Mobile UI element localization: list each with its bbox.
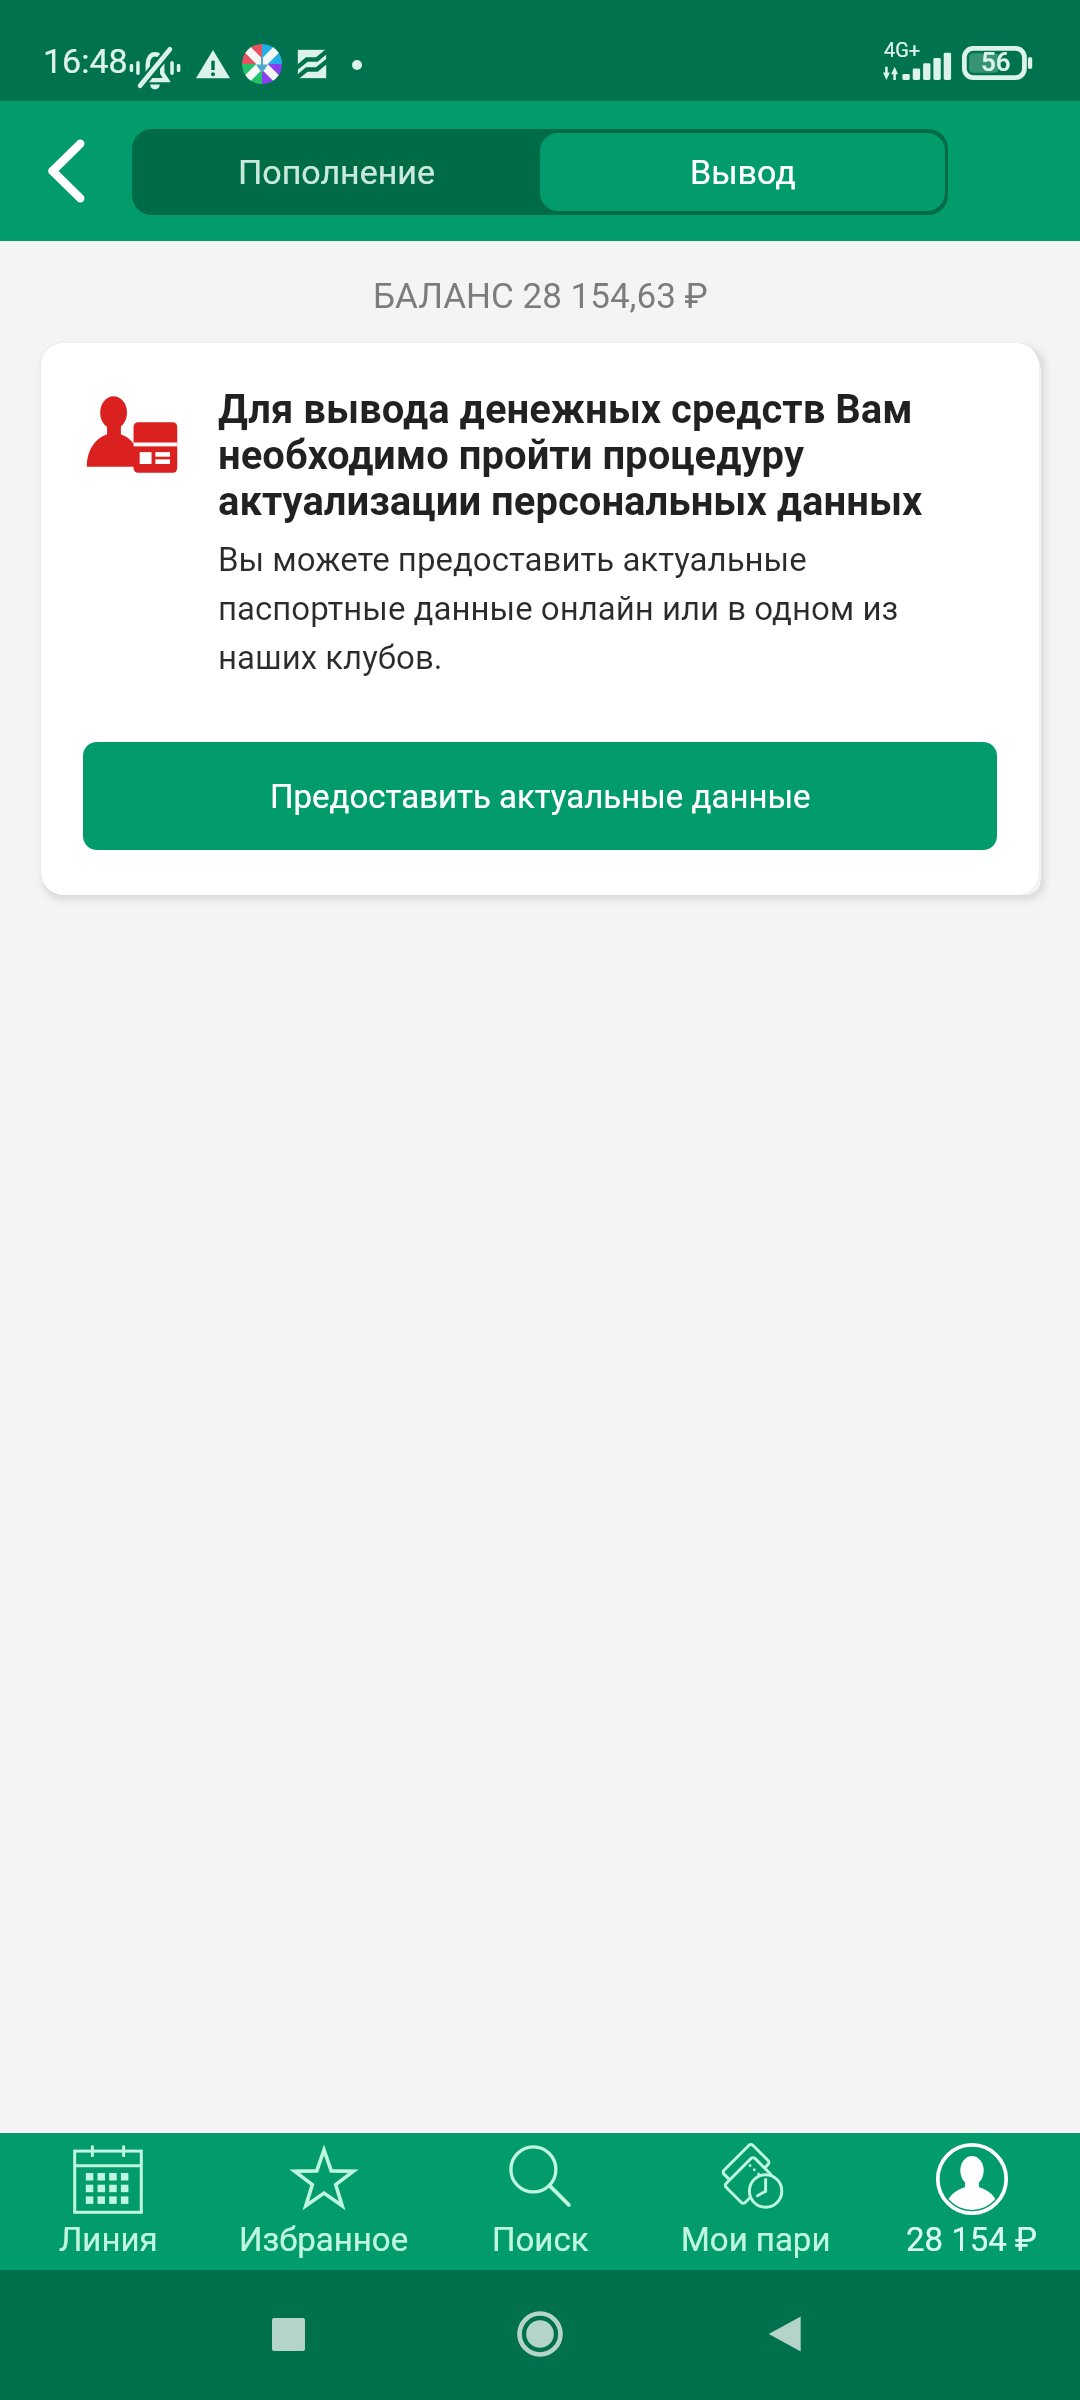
staticText: Поиск bbox=[492, 2220, 589, 2259]
staticText: Линия bbox=[59, 2220, 158, 2259]
staticText: Избранное bbox=[239, 2220, 409, 2259]
button[interactable]: Избранное bbox=[216, 2133, 432, 2270]
staticText: 4G+ bbox=[884, 38, 921, 61]
button[interactable]: Линия bbox=[0, 2133, 216, 2270]
staticText: Пополнение bbox=[238, 152, 435, 192]
staticText: БАЛАНС 28 154,63 ₽ bbox=[373, 276, 708, 317]
button[interactable]: Back bbox=[739, 2286, 835, 2382]
staticText: Вы можете предоставить актуальные паспор… bbox=[218, 540, 997, 677]
button[interactable]: Back bbox=[0, 101, 132, 241]
button[interactable]: Вывод bbox=[540, 133, 945, 211]
button[interactable]: Recents bbox=[240, 2286, 336, 2382]
staticText: Вывод bbox=[690, 152, 796, 192]
button[interactable]: Предоставить актуальные данные bbox=[83, 742, 997, 850]
button[interactable]: Мои пари bbox=[648, 2133, 864, 2270]
button[interactable]: Поиск bbox=[432, 2133, 648, 2270]
staticText: 56 bbox=[981, 47, 1011, 77]
staticText: 28 154 ₽ bbox=[906, 2220, 1038, 2259]
staticText: Для вывода денежных средств Вам необходи… bbox=[218, 386, 997, 525]
staticText: 16:48 bbox=[43, 41, 128, 81]
button[interactable]: Пополнение bbox=[132, 129, 540, 215]
staticText: Предоставить актуальные данные bbox=[270, 777, 811, 816]
staticText: Мои пари bbox=[681, 2220, 831, 2259]
button[interactable]: Home bbox=[492, 2286, 588, 2382]
button[interactable]: 28 154 ₽ bbox=[864, 2133, 1080, 2270]
